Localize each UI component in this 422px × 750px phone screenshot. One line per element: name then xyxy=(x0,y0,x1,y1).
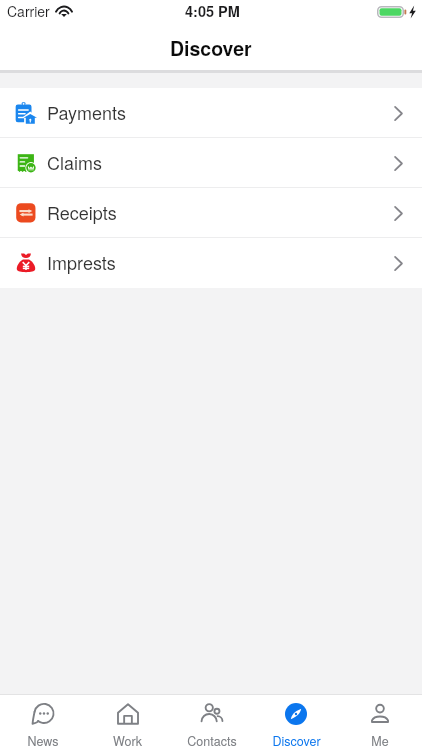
other: Battery charging xyxy=(377,6,417,18)
staticText: Me xyxy=(371,732,389,750)
button[interactable]: Discover xyxy=(254,695,338,750)
staticText: News xyxy=(27,732,59,750)
button[interactable]: Receipts xyxy=(0,188,422,238)
staticText: Contacts xyxy=(187,732,237,750)
staticText: 4:05 PM xyxy=(185,1,240,22)
button[interactable]: Payments xyxy=(0,88,422,138)
staticText: Discover xyxy=(272,732,321,750)
button[interactable]: Contacts xyxy=(170,695,254,750)
staticText: Discover xyxy=(170,34,252,62)
staticText: Claims xyxy=(47,149,102,175)
other: Wi-Fi signal xyxy=(56,6,72,17)
staticText: Carrier xyxy=(7,1,50,21)
button[interactable]: Imprests xyxy=(0,238,422,288)
staticText: Payments xyxy=(47,99,127,125)
staticText: Work xyxy=(113,732,142,750)
button[interactable]: Claims xyxy=(0,138,422,188)
button[interactable]: Me xyxy=(338,695,422,750)
staticText: Receipts xyxy=(47,199,117,225)
staticText: Imprests xyxy=(47,249,116,275)
button[interactable]: Work xyxy=(85,695,170,750)
button[interactable]: News xyxy=(0,695,85,750)
